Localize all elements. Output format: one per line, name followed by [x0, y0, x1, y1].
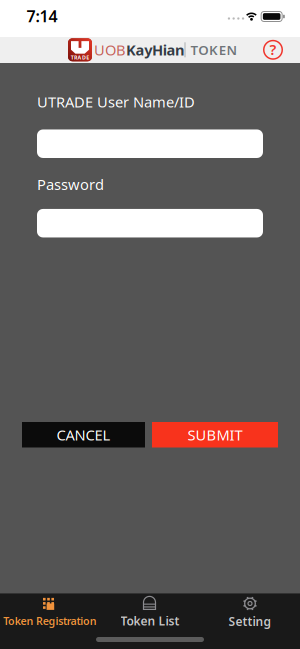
staticText: 7:14	[26, 5, 57, 27]
staticText: Token Registration	[3, 614, 97, 628]
button[interactable]: CANCEL	[22, 422, 145, 447]
staticText: CANCEL	[56, 425, 110, 444]
staticText: Setting	[228, 613, 271, 629]
staticText: TOKEN	[190, 41, 238, 59]
button[interactable]: Token Registration	[0, 598, 100, 628]
button[interactable]: Setting	[200, 596, 300, 629]
staticText: SUBMIT	[187, 425, 242, 444]
staticText: KayHian	[126, 40, 185, 60]
button[interactable]: Help	[261, 38, 285, 62]
staticText: ?	[269, 40, 276, 59]
button[interactable]: SUBMIT	[152, 422, 278, 447]
staticText: UOB	[94, 40, 126, 60]
staticText: Token List	[120, 613, 179, 629]
button[interactable]: Token List	[100, 597, 200, 629]
staticText: Password	[37, 174, 104, 194]
staticText: UTRADE User Name/ID	[37, 92, 195, 111]
staticText: TRADE	[71, 54, 89, 61]
